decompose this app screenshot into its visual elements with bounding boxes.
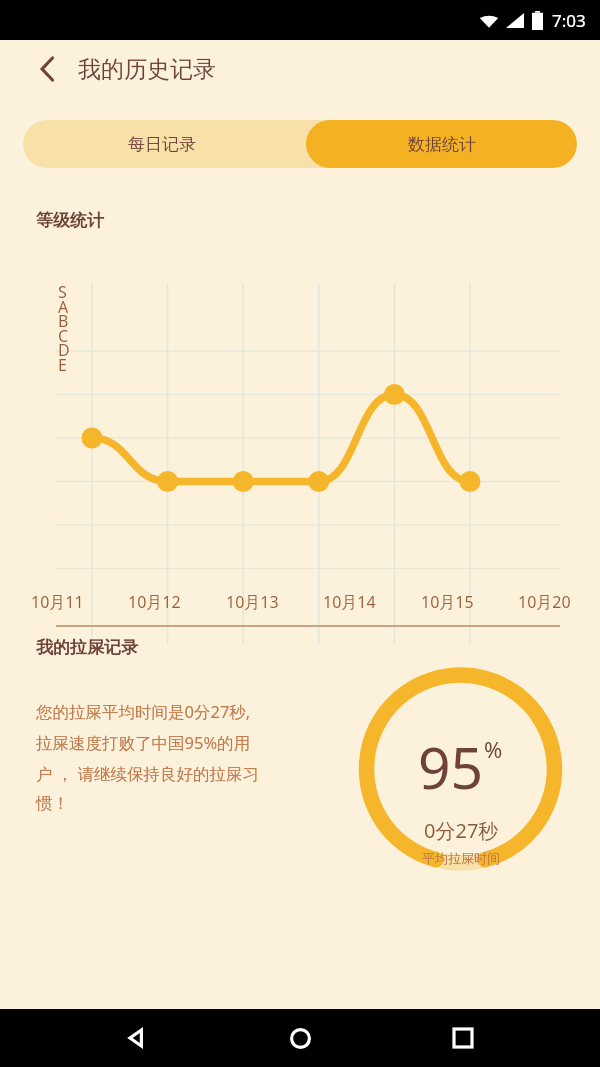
staticText: 95 (418, 728, 484, 806)
staticText: D (58, 339, 70, 361)
staticText: 等级统计 (36, 210, 104, 231)
staticText: 10月11 (31, 591, 84, 613)
staticText: 平均拉屎时间 (422, 850, 500, 866)
staticText: 10月12 (128, 591, 181, 613)
staticText: 您的拉屎平均时间是0分27秒,拉屎速度打败了中国95%的用户 ， 请继续保持良好… (36, 700, 266, 814)
staticText: B (58, 310, 69, 332)
staticText: 数据统计 (408, 134, 476, 155)
button[interactable]: Recents (437, 1012, 489, 1064)
button[interactable]: Back (111, 1012, 163, 1064)
staticText: 10月13 (226, 591, 279, 613)
staticText: 10月15 (421, 591, 474, 613)
staticText: 我的历史记录 (78, 55, 216, 84)
staticText: 每日记录 (128, 134, 196, 155)
staticText: S (58, 281, 67, 303)
staticText: 7:03 (552, 9, 586, 32)
button[interactable]: 每日记录 (23, 120, 300, 168)
staticText: C (58, 325, 69, 347)
button[interactable]: Back (30, 51, 66, 87)
staticText: A (58, 296, 69, 318)
staticText: 0分27秒 (424, 817, 499, 844)
staticText: 我的拉屎记录 (36, 637, 138, 658)
button[interactable]: Home (274, 1012, 326, 1064)
staticText: E (58, 354, 67, 376)
staticText: 10月14 (323, 591, 376, 613)
staticText: % (484, 734, 503, 764)
button[interactable]: 数据统计 (306, 120, 577, 168)
staticText: 10月20 (518, 591, 571, 613)
